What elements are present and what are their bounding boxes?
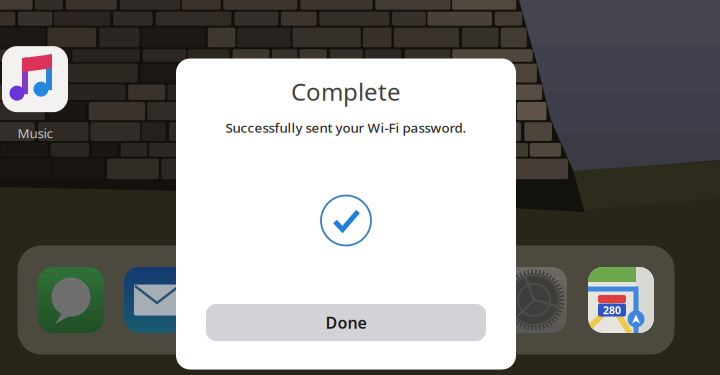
staticText: Successfully sent your Wi-Fi password. bbox=[225, 119, 466, 136]
staticText: Music bbox=[17, 124, 52, 142]
button[interactable]: Done bbox=[206, 304, 486, 341]
button[interactable]: Music bbox=[0, 46, 75, 142]
staticText: 280 bbox=[603, 303, 621, 317]
button[interactable]: Mail bbox=[124, 267, 190, 333]
staticText: Done bbox=[325, 312, 366, 333]
button[interactable]: Maps bbox=[588, 267, 654, 333]
staticText: Complete bbox=[291, 76, 401, 107]
button[interactable]: Messages bbox=[38, 267, 104, 333]
button[interactable]: Settings bbox=[501, 267, 567, 333]
